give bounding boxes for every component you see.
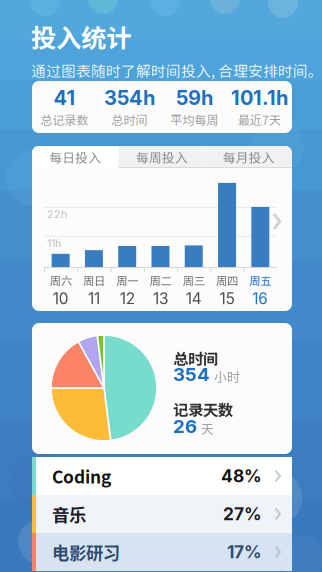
button[interactable]: 每日投入 bbox=[32, 146, 119, 168]
staticText: 周日 bbox=[83, 272, 105, 288]
button[interactable]: 每周投入 bbox=[119, 146, 205, 168]
staticText: 周五 bbox=[249, 272, 271, 288]
button[interactable]: 每月投入 bbox=[205, 146, 292, 168]
staticText: 17% bbox=[227, 541, 262, 562]
staticText: 总时间 bbox=[173, 347, 218, 369]
staticText: 周一 bbox=[116, 272, 138, 288]
staticText: 电影研习 bbox=[52, 539, 120, 565]
staticText: Coding bbox=[52, 463, 111, 489]
staticText: 14 bbox=[186, 289, 202, 308]
staticText: 101.1h bbox=[231, 86, 288, 110]
staticText: 周四 bbox=[216, 272, 238, 288]
staticText: 354 bbox=[173, 363, 210, 386]
staticText: 10 bbox=[53, 289, 69, 308]
staticText: 总记录数 bbox=[40, 111, 88, 128]
staticText: 周六 bbox=[50, 272, 72, 288]
staticText: 总时间 bbox=[111, 111, 147, 128]
staticText: 15 bbox=[219, 289, 234, 308]
staticText: 平均每周 bbox=[170, 111, 218, 128]
staticText: 投入统计 bbox=[31, 18, 131, 55]
staticText: 小时 bbox=[214, 367, 240, 385]
staticText: 最近7天 bbox=[238, 111, 281, 128]
staticText: 音乐 bbox=[52, 501, 86, 527]
staticText: 11 bbox=[88, 289, 100, 308]
staticText: 59h bbox=[176, 86, 213, 110]
staticText: 12 bbox=[120, 289, 135, 308]
staticText: 27% bbox=[223, 503, 262, 524]
staticText: 354h bbox=[104, 86, 155, 110]
staticText: 26 bbox=[173, 415, 197, 438]
staticText: 每月投入 bbox=[223, 148, 275, 166]
staticText: 16 bbox=[252, 289, 268, 308]
button[interactable]: 电影研习 bbox=[32, 533, 292, 571]
staticText: 记录天数 bbox=[173, 398, 233, 420]
staticText: 通过图表随时了解时间投入, 合理安排时间。 bbox=[31, 60, 322, 81]
staticText: 天 bbox=[201, 419, 214, 437]
staticText: 11h bbox=[47, 237, 61, 250]
staticText: 每周投入 bbox=[136, 148, 188, 166]
staticText: 13 bbox=[153, 289, 168, 308]
button[interactable]: Coding bbox=[32, 457, 292, 495]
staticText: 22h bbox=[47, 208, 67, 221]
button[interactable]: 音乐 bbox=[32, 495, 292, 533]
staticText: 48% bbox=[221, 465, 262, 486]
staticText: 周二 bbox=[149, 272, 171, 288]
staticText: 41 bbox=[53, 86, 75, 110]
staticText: 周三 bbox=[183, 272, 205, 288]
staticText: 每日投入 bbox=[49, 148, 101, 166]
